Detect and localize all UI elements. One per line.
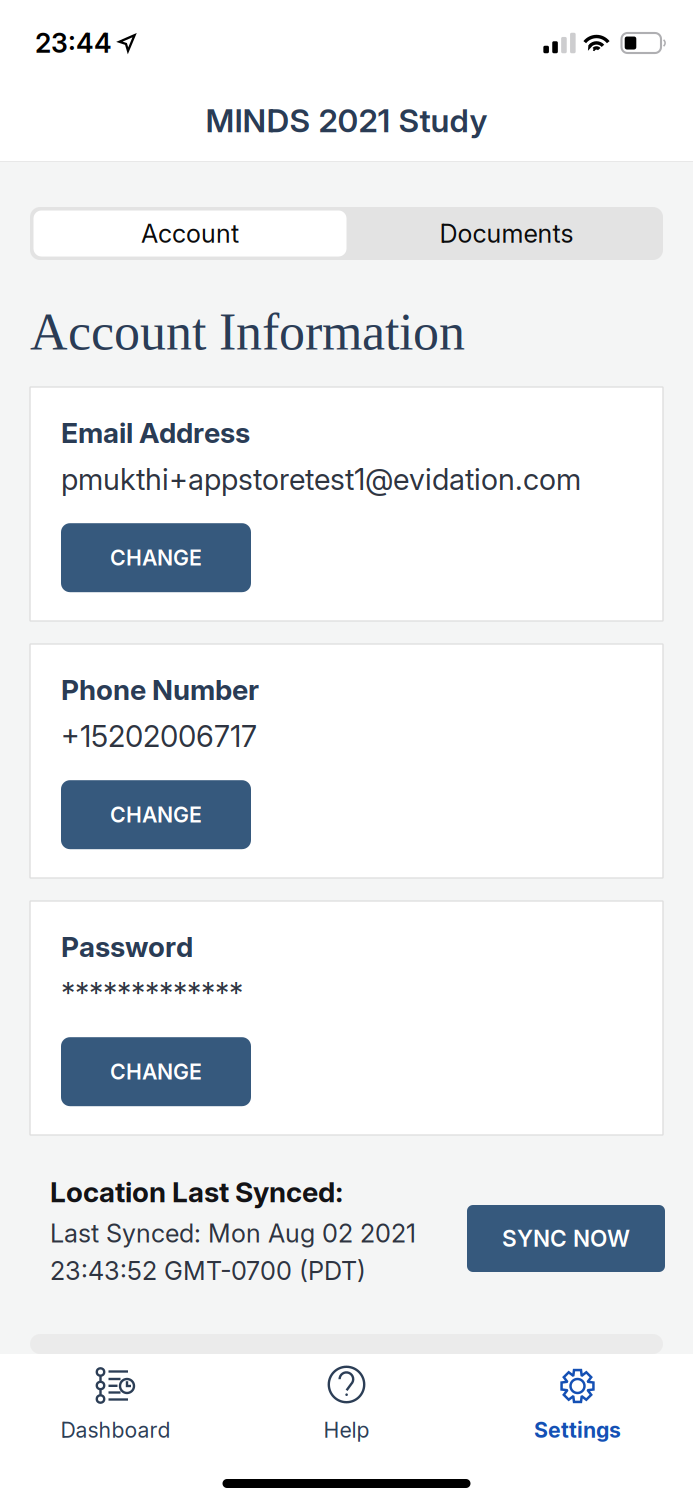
staticText: MINDS 2021 Study — [205, 101, 487, 140]
staticText: Last Synced: Mon Aug 02 2021 — [50, 1218, 416, 1249]
staticText: Settings — [534, 1417, 621, 1443]
staticText: Dashboard — [60, 1417, 170, 1443]
staticText: ************* — [61, 976, 243, 1011]
staticText: 23:43:52 GMT-0700 (PDT) — [50, 1255, 366, 1286]
button[interactable]: Help — [231, 1354, 462, 1454]
button[interactable]: Documents — [350, 207, 663, 260]
staticText: Password — [61, 930, 193, 964]
staticText: Phone Number — [61, 673, 259, 707]
button[interactable]: Account — [30, 207, 350, 260]
staticText: Account Information — [30, 303, 465, 361]
staticText: +15202006717 — [61, 719, 257, 754]
button[interactable]: CHANGE — [61, 780, 251, 849]
button[interactable]: SYNC NOW — [467, 1205, 665, 1272]
button[interactable]: Settings — [462, 1354, 693, 1454]
staticText: CHANGE — [110, 545, 202, 571]
staticText: Location Last Synced: — [50, 1175, 343, 1209]
staticText: Documents — [439, 218, 573, 249]
staticText: Account — [141, 218, 239, 249]
staticText: pmukthi+appstoretest1@evidation.com — [61, 462, 581, 497]
button[interactable]: CHANGE — [61, 523, 251, 592]
staticText: CHANGE — [110, 1059, 202, 1085]
button[interactable]: CHANGE — [61, 1037, 251, 1106]
button[interactable]: Dashboard — [0, 1354, 231, 1454]
staticText: Help — [323, 1417, 369, 1443]
staticText: 23:44 — [35, 27, 112, 59]
staticText: Email Address — [61, 416, 250, 450]
staticText: CHANGE — [110, 802, 202, 828]
staticText: SYNC NOW — [502, 1225, 630, 1252]
